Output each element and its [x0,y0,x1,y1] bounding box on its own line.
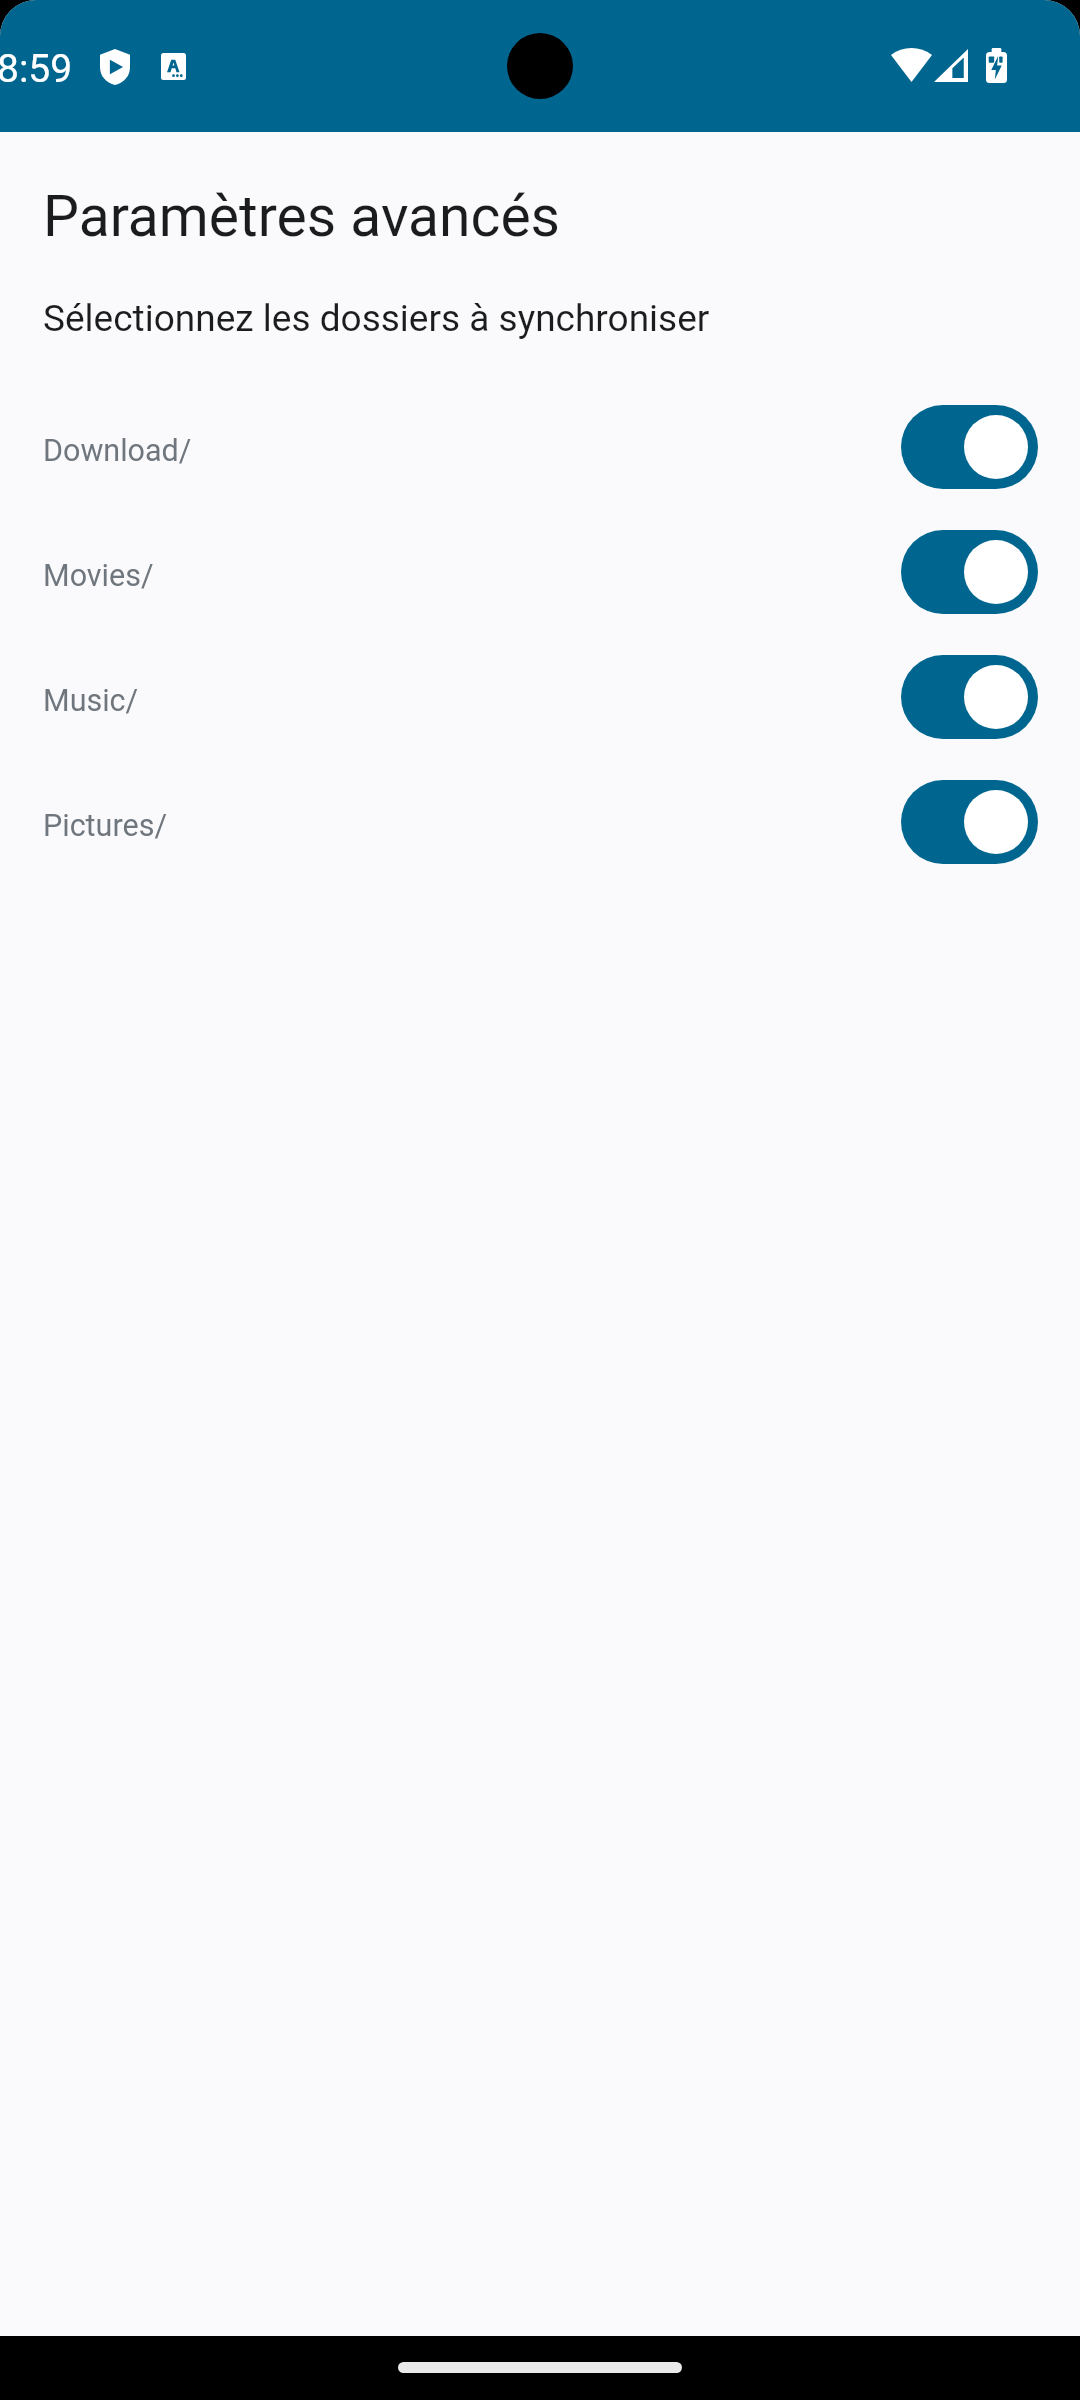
button[interactable]: Movies/ [0,502,1080,627]
staticText: Pictures/ [43,808,167,844]
button[interactable]: Pictures/ [0,752,1080,877]
other: Captions [161,53,186,80]
button[interactable]: Toggle Movies/ [901,530,1038,614]
button[interactable]: Music/ [0,627,1080,752]
button[interactable]: Toggle Music/ [901,655,1038,739]
button[interactable]: Download/ [0,377,1080,502]
staticText: Sélectionnez les dossiers à synchroniser [43,297,710,340]
other: Mobile signal [934,49,968,82]
other: Wi-Fi [891,48,932,82]
button[interactable]: Toggle Pictures/ [901,780,1038,864]
other: Battery charging [986,48,1007,83]
button[interactable]: Toggle Download/ [901,405,1038,489]
staticText: Music/ [43,683,139,719]
staticText: Movies/ [43,558,154,594]
other: Play Protect [100,49,130,85]
staticText: Paramètres avancés [43,183,561,250]
staticText: Download/ [43,433,192,469]
staticText: 8:59 [0,46,73,92]
